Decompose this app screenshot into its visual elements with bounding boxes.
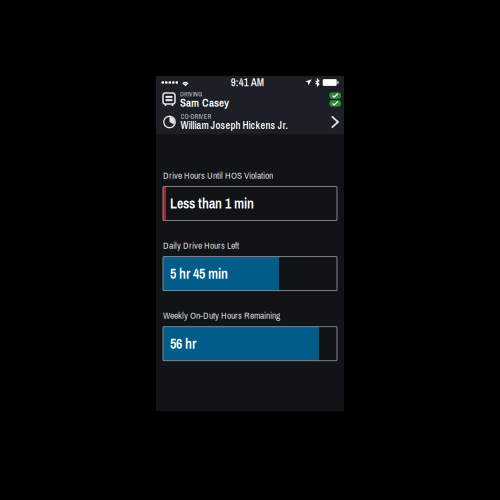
staticText: Weekly On-Duty Hours Remaining <box>163 309 280 322</box>
button[interactable]: DRIVING <box>156 89 344 110</box>
staticText: CO-DRIVER <box>180 112 211 121</box>
staticText: William Joseph Hickens Jr. <box>180 118 287 132</box>
staticText: Less than 1 min <box>170 194 254 213</box>
staticText: Daily Drive Hours Left <box>163 239 239 252</box>
staticText: 9:41 AM <box>231 75 264 90</box>
staticText: 5 hr 45 min <box>170 264 228 283</box>
button[interactable]: CO-DRIVER <box>156 110 344 134</box>
staticText: 56 hr <box>170 334 196 353</box>
staticText: Sam Casey <box>180 95 229 110</box>
staticText: DRIVING <box>180 90 202 98</box>
staticText: Drive Hours Until HOS Violation <box>163 169 273 182</box>
